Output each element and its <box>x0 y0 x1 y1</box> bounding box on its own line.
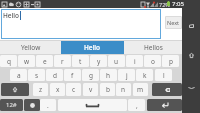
button[interactable]: Hello <box>61 41 124 54</box>
button[interactable]: i <box>126 55 143 67</box>
button[interactable]: o <box>144 55 161 67</box>
staticText: Hello <box>84 43 101 52</box>
staticText: d <box>53 71 57 80</box>
button[interactable]: Yellow <box>0 41 61 54</box>
staticText: n <box>121 85 126 94</box>
button[interactable]: Hellos <box>124 41 182 54</box>
button[interactable]: y <box>90 55 107 67</box>
button[interactable]: u <box>108 55 125 67</box>
staticText: m <box>137 85 144 94</box>
staticText: o <box>151 57 155 66</box>
staticText: 7:05 <box>172 0 184 8</box>
button[interactable]: j <box>118 69 135 81</box>
button[interactable]: Delete <box>152 83 182 96</box>
staticText: Yellow <box>21 43 41 52</box>
button[interactable]: Voice input <box>24 99 40 111</box>
staticText: x <box>56 85 60 94</box>
button[interactable]: c <box>66 83 81 96</box>
button[interactable]: b <box>100 83 115 96</box>
button[interactable]: q <box>0 55 17 67</box>
button[interactable]: z <box>33 83 48 96</box>
button[interactable]: r <box>54 55 71 67</box>
staticText: s <box>35 71 39 80</box>
staticText: r <box>61 57 64 66</box>
button[interactable]: l <box>155 69 172 81</box>
staticText: h <box>106 71 111 80</box>
staticText: v <box>89 85 93 94</box>
button[interactable]: n <box>116 83 131 96</box>
button[interactable]: m <box>133 83 148 96</box>
button[interactable]: t <box>72 55 89 67</box>
button[interactable]: Hello <box>1 9 161 39</box>
staticText: Next <box>167 19 180 26</box>
button[interactable]: x <box>50 83 65 96</box>
button[interactable]: p <box>162 55 179 67</box>
button[interactable]: Recent apps <box>182 15 200 36</box>
button[interactable]: Enter <box>147 99 182 111</box>
staticText: u <box>114 57 119 66</box>
button[interactable]: k <box>136 69 153 81</box>
button[interactable]: w <box>18 55 35 67</box>
button[interactable]: s <box>28 69 45 81</box>
button[interactable]: 12# <box>0 99 23 111</box>
staticText: z <box>39 85 43 94</box>
staticText: g <box>89 71 93 80</box>
button[interactable]: d <box>46 69 63 81</box>
button[interactable]: , <box>128 99 145 111</box>
button[interactable]: Shift <box>1 83 29 96</box>
staticText: 72% <box>159 1 170 8</box>
button[interactable]: h <box>100 69 117 81</box>
staticText: w <box>24 57 30 66</box>
button[interactable]: Next <box>165 16 182 29</box>
staticText: , <box>136 101 138 110</box>
staticText: c <box>72 85 76 94</box>
staticText: q <box>7 57 11 66</box>
staticText: e <box>43 57 47 66</box>
staticText: Hello <box>3 11 20 20</box>
staticText: b <box>106 85 110 94</box>
staticText: k <box>143 71 147 80</box>
staticText: Hellos <box>144 43 163 52</box>
staticText: i <box>134 57 136 66</box>
button[interactable]: g <box>82 69 99 81</box>
button[interactable]: Space <box>58 99 127 111</box>
staticText: t <box>79 57 82 66</box>
button[interactable]: . <box>40 99 56 111</box>
button[interactable]: a <box>10 69 27 81</box>
button[interactable]: f <box>64 69 81 81</box>
staticText: f <box>71 71 74 80</box>
staticText: a <box>17 71 21 80</box>
button[interactable]: e <box>36 55 53 67</box>
button[interactable]: Home <box>182 45 200 66</box>
staticText: . <box>47 101 49 110</box>
staticText: p <box>169 57 173 66</box>
staticText: l <box>163 71 165 80</box>
staticText: 12# <box>6 101 17 109</box>
button[interactable]: v <box>83 83 98 96</box>
staticText: y <box>97 57 101 66</box>
button[interactable]: Back <box>182 77 200 98</box>
staticText: j <box>126 71 128 80</box>
